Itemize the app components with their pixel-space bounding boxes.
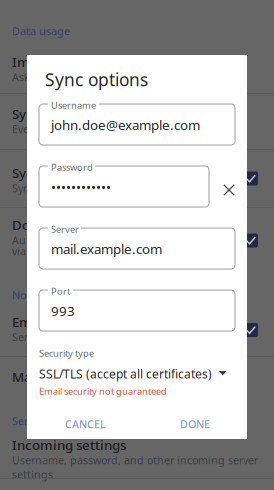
staticText: Download attachments [12,216,161,234]
staticText: 993 [51,302,75,320]
staticText: Sync over Wi-Fi [12,164,108,182]
staticText: Security type [39,347,94,359]
button[interactable]: Incoming settings [0,430,274,476]
staticText: Server settings [12,414,90,428]
staticText: john.doe@example.com [51,116,200,134]
button[interactable]: Images [0,44,274,93]
staticText: SSL/TLS (accept all certificates) [39,366,212,382]
staticText: Sync options [45,68,148,91]
staticText: Data usage [12,24,70,38]
staticText: Email notifications [12,313,130,331]
staticText: Port [51,285,70,297]
staticText: DONE [180,417,210,431]
button[interactable]: Clear password [218,179,240,201]
staticText: Manage notifications [12,368,146,386]
staticText: Sync [12,105,41,123]
staticText: •••••••••••• [51,178,111,196]
staticText: Username, password, and other incoming s… [12,453,258,481]
button[interactable]: DONE [172,409,218,439]
staticText: Incoming settings [12,436,126,454]
staticText: Sync only while charging [12,181,138,195]
button[interactable]: Download attachments [0,208,274,273]
staticText: CANCEL [65,417,106,431]
button[interactable]: Email notifications [0,304,274,356]
button[interactable]: Sync over Wi-Fi [0,150,274,207]
staticText: via Wi-Fi [12,244,54,258]
staticText: Notifications [12,288,78,302]
button[interactable]: Security type [27,55,247,439]
staticText: Password [51,161,93,173]
staticText: Ask before displaying external images [12,70,207,84]
button[interactable]: Manage notifications [0,358,274,402]
button[interactable]: Sync [0,94,274,149]
button[interactable]: CANCEL [57,409,114,439]
staticText: Images [12,53,60,71]
staticText: Server [51,223,79,235]
staticText: mail.example.com [51,240,162,258]
staticText: Every 15 minutes [12,122,98,136]
staticText: Username [51,99,96,111]
staticText: Send notifications to this device [12,330,173,344]
staticText: Email security not guaranteed [39,385,167,397]
staticText: Automatically download attachments [12,233,201,247]
